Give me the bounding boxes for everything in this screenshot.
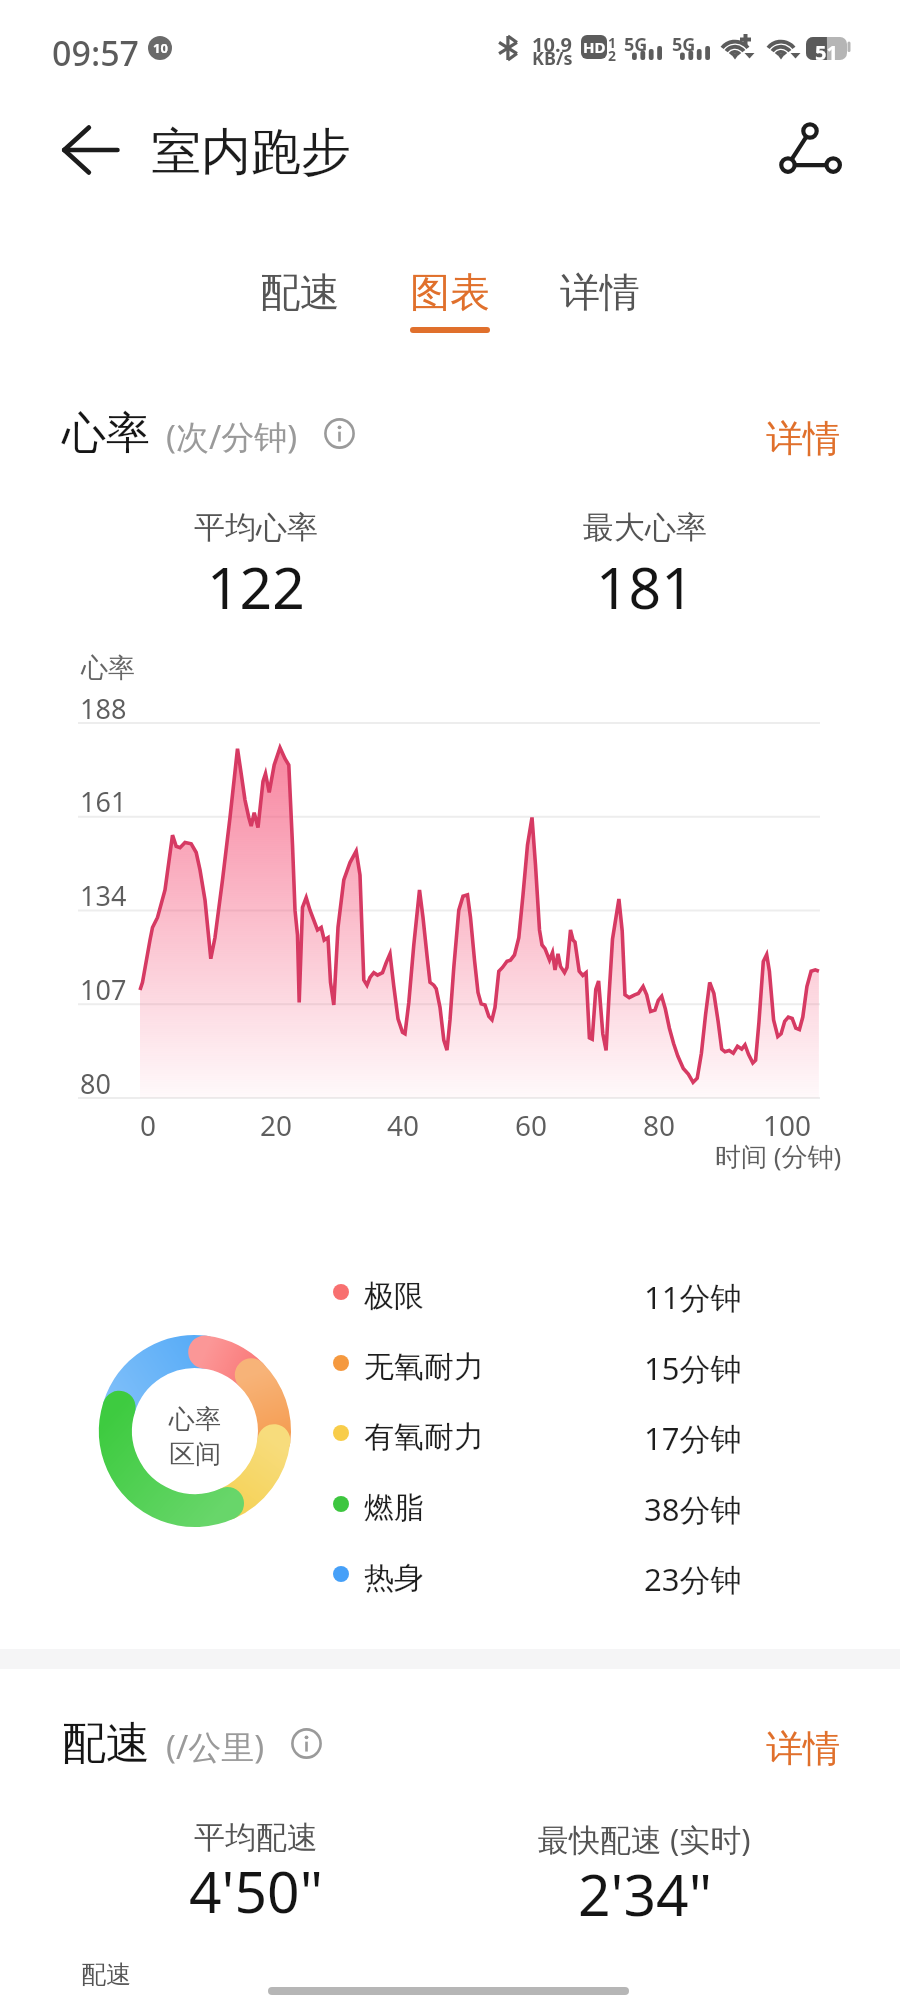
staticText: 心率 xyxy=(81,651,135,685)
staticText: 最大心率 xyxy=(583,508,707,547)
button[interactable]: 图表 xyxy=(390,267,510,347)
button[interactable]: 详情 xyxy=(540,267,660,347)
staticText: 181 xyxy=(596,548,694,626)
staticText: 心率 xyxy=(62,406,150,461)
button[interactable]: 极限 xyxy=(320,1262,850,1322)
staticText: 5G xyxy=(672,32,696,57)
staticText: 134 xyxy=(80,877,127,909)
staticText: 热身 xyxy=(364,1559,424,1597)
staticText: 122 xyxy=(207,548,305,626)
staticText: 1 xyxy=(608,33,617,52)
staticText: 100 xyxy=(763,1106,812,1144)
staticText: 区间 xyxy=(169,1438,221,1471)
button[interactable]: 燃脂 xyxy=(320,1474,850,1534)
staticText: 80 xyxy=(80,1065,111,1097)
staticText: 无氧耐力 xyxy=(364,1348,484,1386)
staticText: 2 xyxy=(608,46,617,65)
staticText: 2'34" xyxy=(578,1855,712,1933)
staticText: 11分钟 xyxy=(644,1276,742,1318)
staticText: 107 xyxy=(80,971,127,1003)
button[interactable]: 详情 xyxy=(756,1715,850,1782)
staticText: 20 xyxy=(260,1106,293,1144)
staticText: HD xyxy=(583,37,606,57)
staticText: (次/分钟) xyxy=(166,414,298,459)
staticText: 10 xyxy=(153,39,168,57)
staticText: 详情 xyxy=(766,1725,840,1772)
staticText: 0 xyxy=(140,1106,157,1144)
staticText: 时间 (分钟) xyxy=(715,1138,842,1174)
staticText: 详情 xyxy=(766,415,840,462)
staticText: 80 xyxy=(643,1106,676,1144)
staticText: 09:57 xyxy=(52,30,140,76)
staticText: 15分钟 xyxy=(644,1347,742,1389)
staticText: 详情 xyxy=(560,267,640,317)
staticText: 17分钟 xyxy=(644,1417,742,1459)
staticText: 配速 xyxy=(260,267,340,317)
staticText: 极限 xyxy=(364,1277,424,1315)
staticText: 最快配速 (实时) xyxy=(538,1818,751,1860)
button[interactable]: 无氧耐力 xyxy=(320,1333,850,1393)
staticText: 平均配速 xyxy=(194,1818,318,1857)
staticText: 配速 xyxy=(62,1716,150,1771)
staticText: 188 xyxy=(80,690,127,722)
button[interactable]: Back xyxy=(44,104,136,196)
staticText: (/公里) xyxy=(166,1724,265,1769)
button[interactable]: 有氧耐力 xyxy=(320,1403,850,1463)
button[interactable]: Share xyxy=(764,104,856,196)
staticText: 配速 xyxy=(81,1959,131,1990)
staticText: 23分钟 xyxy=(644,1558,742,1600)
staticText: 室内跑步 xyxy=(151,121,351,184)
staticText: KB/s xyxy=(532,46,573,71)
button[interactable]: 详情 xyxy=(756,405,850,472)
button[interactable]: 热身 xyxy=(320,1544,850,1604)
button[interactable]: 配速 xyxy=(240,267,360,347)
staticText: 有氧耐力 xyxy=(364,1418,484,1456)
staticText: 5G xyxy=(624,32,648,57)
staticText: 161 xyxy=(80,783,127,815)
staticText: 图表 xyxy=(410,267,490,317)
staticText: 38分钟 xyxy=(644,1488,742,1530)
staticText: 心率 xyxy=(169,1403,221,1436)
staticText: 60 xyxy=(515,1106,548,1144)
staticText: 51 xyxy=(815,39,838,62)
staticText: 4'50" xyxy=(189,1852,323,1930)
staticText: 40 xyxy=(387,1106,420,1144)
staticText: 平均心率 xyxy=(194,508,318,547)
staticText: 10.9 xyxy=(532,31,572,58)
staticText: 燃脂 xyxy=(364,1489,424,1527)
